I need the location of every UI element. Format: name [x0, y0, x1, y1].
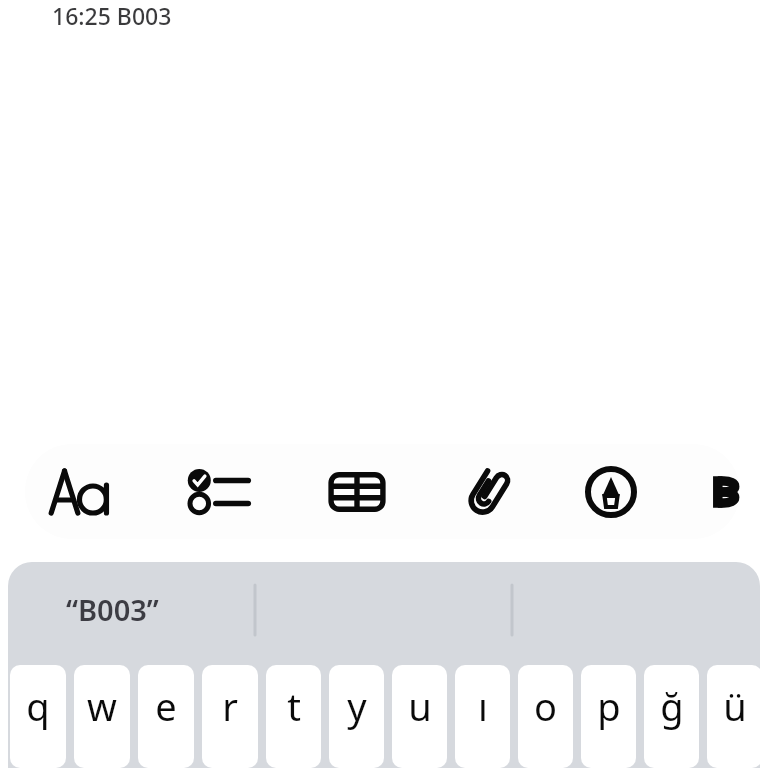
staticText: p [597, 680, 621, 732]
button[interactable]: r [202, 665, 258, 768]
button[interactable]: u [392, 665, 447, 768]
button[interactable]: p [581, 665, 636, 768]
button[interactable]: Attach file [452, 456, 524, 528]
button[interactable]: Text format [44, 456, 116, 528]
button[interactable]: Checklist [182, 456, 254, 528]
staticText: o [534, 680, 557, 732]
staticText: ü [723, 680, 747, 732]
staticText: ı [478, 680, 488, 732]
staticText: q [26, 680, 50, 732]
button[interactable]: q [10, 665, 66, 768]
staticText: “B003” [66, 590, 159, 629]
staticText: y [347, 680, 367, 732]
button[interactable]: ü [707, 665, 760, 768]
button[interactable]: Bold [689, 456, 740, 528]
button[interactable]: e [138, 665, 194, 768]
staticText: 16:25 B003 [52, 0, 172, 31]
button[interactable]: Markup [575, 456, 647, 528]
button[interactable]: Table [321, 456, 393, 528]
staticText: ğ [660, 680, 684, 732]
staticText: w [87, 680, 117, 732]
button[interactable]: t [266, 665, 321, 768]
button[interactable]: ğ [644, 665, 699, 768]
staticText: t [287, 680, 301, 732]
button[interactable]: y [329, 665, 384, 768]
button[interactable]: o [518, 665, 573, 768]
staticText: e [155, 680, 177, 732]
staticText: u [408, 680, 432, 732]
button[interactable]: w [74, 665, 130, 768]
button[interactable]: ı [455, 665, 510, 768]
staticText: r [222, 680, 238, 732]
